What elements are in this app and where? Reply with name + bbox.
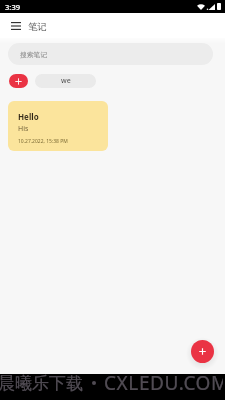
button[interactable]: we xyxy=(35,74,96,88)
staticText: 10.27.2022, 15:38 PM xyxy=(18,138,68,145)
staticText: His xyxy=(18,124,29,134)
staticText: 3:39 xyxy=(5,2,21,12)
staticText: 晨曦乐下载 xyxy=(0,373,83,394)
button[interactable]: 搜索笔记 xyxy=(8,43,213,65)
button[interactable]: Add tag xyxy=(9,74,28,88)
button[interactable]: New note xyxy=(191,340,214,363)
button[interactable]: Menu xyxy=(7,17,25,35)
staticText: 笔记 xyxy=(28,21,47,33)
staticText: CXLEDU.COM xyxy=(104,370,223,396)
staticText: Hello xyxy=(18,111,39,122)
staticText: we xyxy=(61,76,71,86)
staticText: 搜索笔记 xyxy=(20,50,48,59)
button[interactable]: Hello xyxy=(8,101,108,151)
